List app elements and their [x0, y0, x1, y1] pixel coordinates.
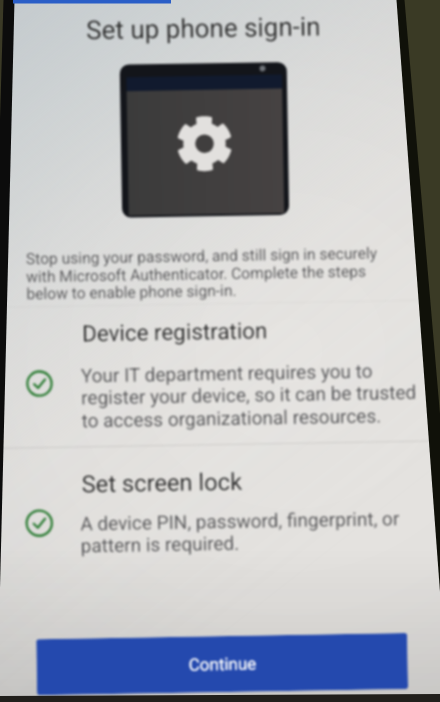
staticText: Device registration — [82, 317, 268, 346]
staticText: Continue — [188, 654, 257, 675]
button[interactable]: Set screen lock — [0, 455, 433, 572]
staticText: Set screen lock — [81, 468, 243, 498]
staticText: A device PIN, password, fingerprint, or … — [80, 507, 421, 557]
staticText: Set up phone sign-in — [86, 11, 321, 45]
other: Step complete — [26, 370, 53, 397]
button[interactable]: Continue — [36, 633, 408, 695]
staticText: Your IT department requires you to regis… — [81, 359, 422, 432]
other: Phone settings illustration — [120, 62, 289, 218]
staticText: Stop using your password, and still sign… — [26, 244, 398, 303]
button[interactable]: Device registration — [0, 307, 431, 444]
other: Step complete — [25, 509, 53, 537]
